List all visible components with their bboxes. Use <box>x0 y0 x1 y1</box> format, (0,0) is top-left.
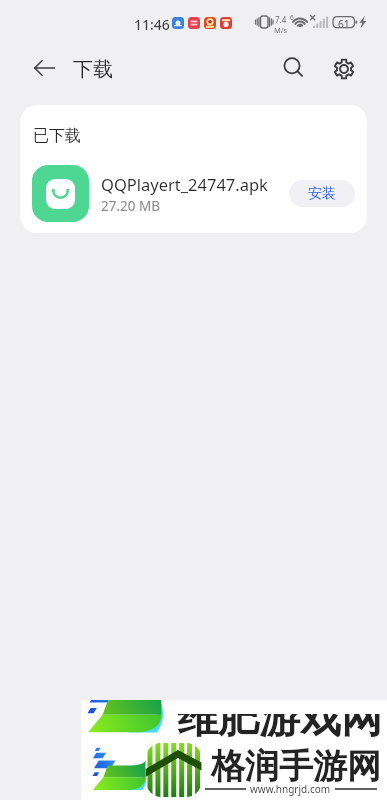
staticText: 7.4 <box>275 14 287 25</box>
button[interactable]: Settings <box>327 52 361 86</box>
staticText: 11:46 <box>134 15 170 34</box>
staticText: 格润手游网 <box>211 745 381 788</box>
staticText: 下载 <box>73 57 113 82</box>
staticText: www.hngrjd.com <box>250 782 331 796</box>
button[interactable]: 安装 <box>289 180 355 207</box>
staticText: 已下载 <box>33 126 81 146</box>
staticText: 6 <box>290 13 294 22</box>
staticText: 安装 <box>308 185 336 203</box>
staticText: QQPlayert_24747.apk <box>101 173 268 195</box>
staticText: 61 <box>338 17 350 31</box>
staticText: 27.20 MB <box>101 197 161 215</box>
button[interactable]: QQPlayert_24747.apk <box>20 157 367 229</box>
staticText: M/s <box>274 25 288 35</box>
button[interactable]: Search <box>276 51 310 85</box>
button[interactable]: Back <box>28 52 60 84</box>
staticText: 维肥游戏网 <box>177 714 382 745</box>
